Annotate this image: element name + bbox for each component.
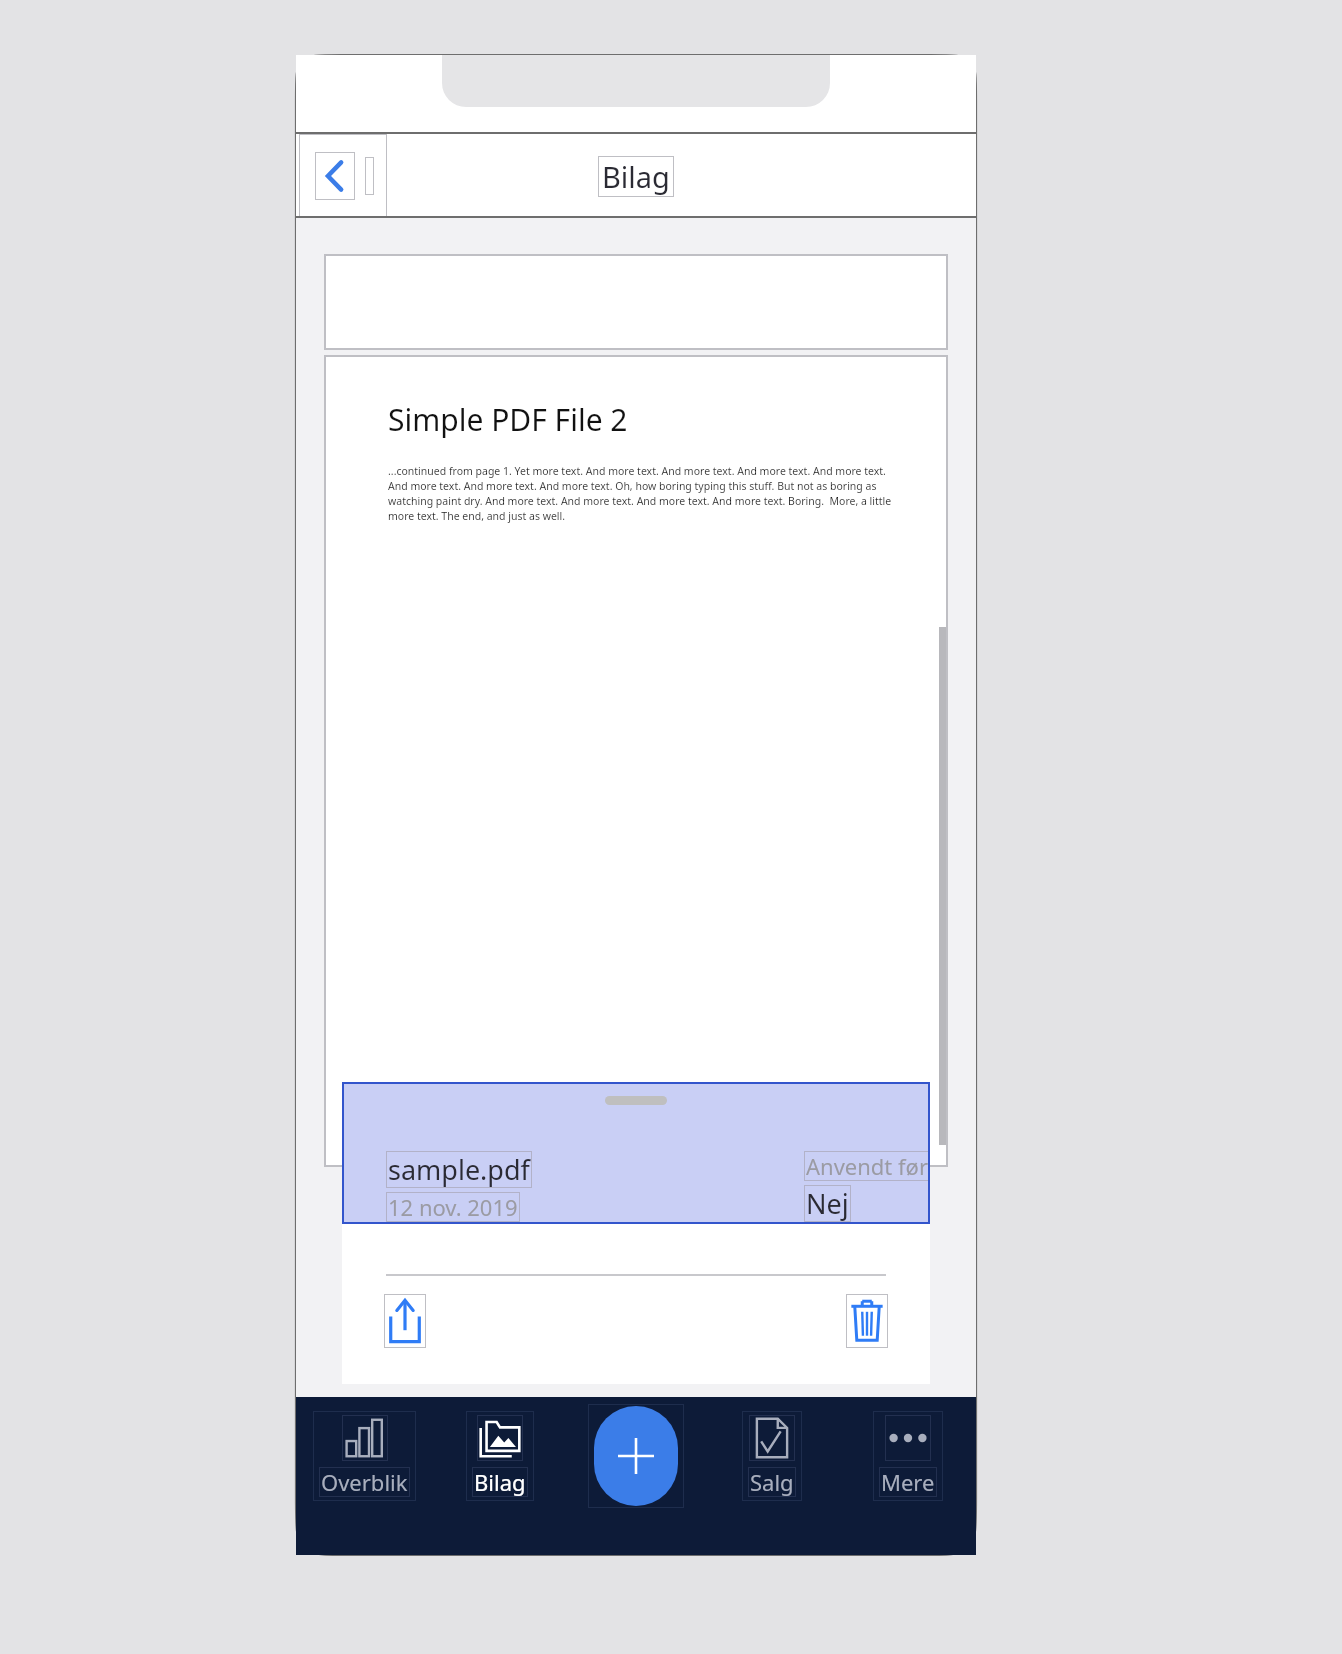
staticText: Overblik: [321, 1467, 408, 1497]
staticText: Bilag: [602, 157, 670, 196]
button[interactable]: Salg: [704, 1397, 840, 1515]
staticText: 12 nov. 2019: [388, 1192, 518, 1222]
button[interactable]: Back: [299, 134, 387, 218]
button[interactable]: sample.pdf: [342, 1082, 930, 1224]
staticText: Salg: [750, 1467, 794, 1497]
button[interactable]: Bilag: [432, 1397, 568, 1515]
button[interactable]: Delete: [846, 1294, 888, 1348]
staticText: Simple PDF File 2: [388, 399, 628, 440]
button[interactable]: Overblik: [296, 1397, 432, 1515]
staticText: Anvendt før: [806, 1151, 928, 1181]
staticText: Bilag: [474, 1467, 526, 1497]
staticText: ...continued from page 1. Yet more text.…: [388, 464, 908, 523]
button[interactable]: Share: [384, 1294, 426, 1348]
button[interactable]: Add: [594, 1406, 678, 1506]
staticText: Nej: [806, 1185, 849, 1222]
staticText: Mere: [881, 1467, 935, 1497]
button[interactable]: Mere: [840, 1397, 976, 1515]
staticText: sample.pdf: [388, 1151, 530, 1188]
